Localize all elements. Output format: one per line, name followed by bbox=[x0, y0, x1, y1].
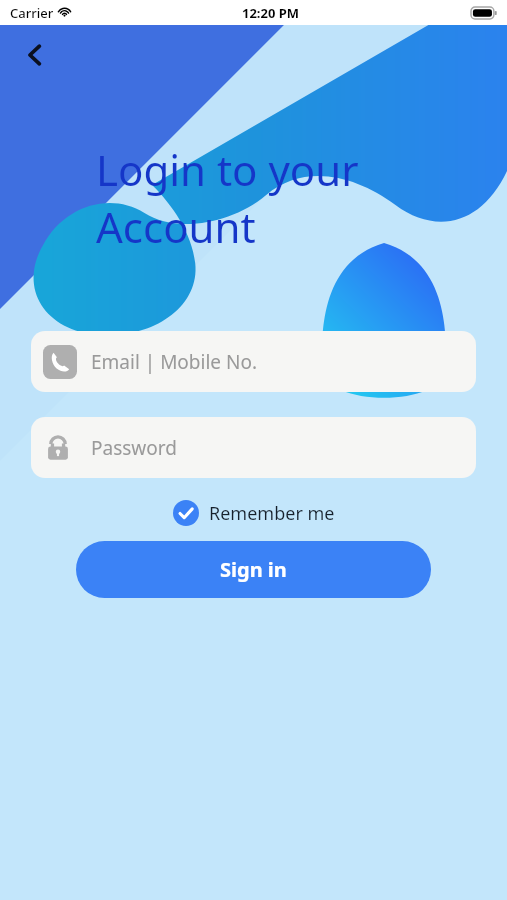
button[interactable]: Sign in bbox=[76, 541, 431, 598]
staticText: Email | Mobile No. bbox=[91, 349, 258, 375]
button[interactable]: Remember me bbox=[169, 497, 339, 529]
button[interactable]: Password bbox=[31, 417, 476, 478]
staticText: Remember me bbox=[209, 501, 335, 526]
staticText: Sign in bbox=[220, 556, 287, 583]
staticText: Carrier bbox=[10, 4, 54, 22]
staticText: Account bbox=[96, 198, 256, 255]
button[interactable]: Back bbox=[13, 33, 57, 77]
staticText: Password bbox=[91, 435, 177, 461]
button[interactable]: Email | Mobile No. bbox=[31, 331, 476, 392]
staticText: Login to your bbox=[96, 141, 359, 198]
staticText: 12:20 PM bbox=[242, 4, 300, 22]
